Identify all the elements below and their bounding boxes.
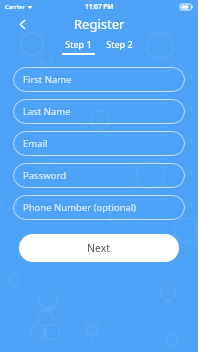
staticText: Password [23, 169, 66, 182]
staticText: Carrier [5, 3, 25, 11]
staticText: Last Name [23, 105, 71, 118]
staticText: 11:07 PM [85, 2, 114, 11]
button[interactable]: Phone Number (optional) [13, 195, 185, 220]
staticText: Step 1 [65, 38, 92, 50]
button[interactable]: First Name [13, 67, 185, 92]
staticText: Email [23, 137, 48, 150]
button[interactable]: Back [12, 14, 32, 34]
staticText: Register [74, 15, 125, 33]
button[interactable]: Next [19, 234, 179, 262]
staticText: Step 2 [106, 38, 133, 50]
staticText: First Name [23, 73, 72, 86]
button[interactable]: Password [13, 163, 185, 188]
button[interactable]: Step 2 [101, 38, 138, 55]
staticText: Phone Number (optional) [23, 201, 137, 214]
button[interactable]: Email [13, 131, 185, 156]
button[interactable]: Step 1 [60, 38, 97, 55]
button[interactable]: Last Name [13, 99, 185, 124]
staticText: Next [87, 241, 111, 255]
